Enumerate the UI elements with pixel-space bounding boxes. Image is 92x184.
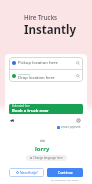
button[interactable]: Continue — [47, 168, 83, 177]
button[interactable]: Need help? — [9, 168, 44, 177]
staticText: Change language here — [33, 156, 63, 160]
button[interactable]: Pickup location here — [9, 57, 83, 69]
staticText: secure payment — [61, 125, 81, 129]
staticText: Continue — [58, 170, 73, 175]
button[interactable]: Estimated fare — [9, 104, 83, 114]
staticText: by continuing you agree — [51, 178, 79, 181]
staticText: Pickup location here — [18, 60, 58, 66]
staticText: lorry — [35, 145, 50, 153]
staticText: Book a truck now — [12, 108, 49, 114]
button[interactable]: Trucks — [8, 116, 16, 124]
button[interactable]: Search — [75, 60, 81, 66]
button[interactable]: Help — [74, 116, 82, 124]
staticText: Need help? — [20, 170, 38, 175]
staticText: Hire Trucks — [24, 13, 58, 21]
staticText: Suggested — [18, 72, 30, 75]
button[interactable]: Change language here — [26, 155, 67, 161]
staticText: Estimated fare — [12, 104, 30, 108]
button[interactable]: Suggested — [9, 70, 83, 82]
button[interactable]: Search — [75, 73, 81, 79]
staticText: Instantly — [24, 22, 77, 38]
staticText: Drop location here — [18, 75, 55, 81]
